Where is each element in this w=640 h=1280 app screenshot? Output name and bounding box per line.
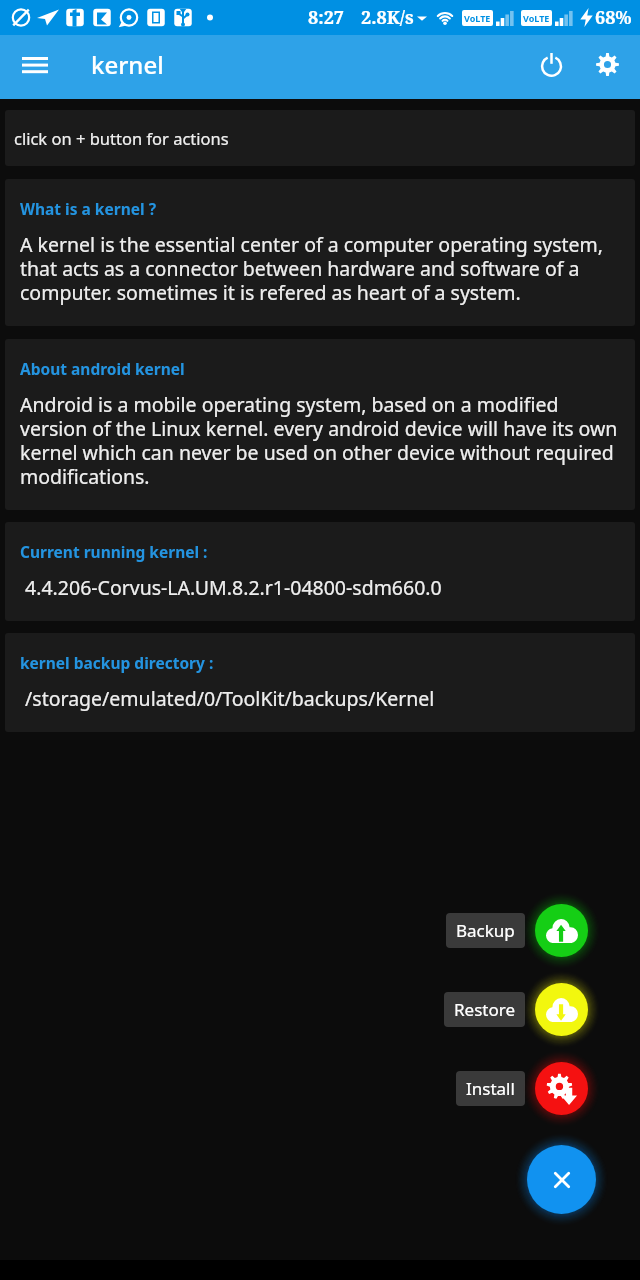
staticText: VoLTE xyxy=(523,12,550,24)
staticText: 8:27 xyxy=(308,5,344,30)
staticText: Current running kernel : xyxy=(20,541,208,562)
button[interactable]: click on + button for actions xyxy=(5,110,635,166)
button[interactable]: Menu xyxy=(6,33,64,97)
staticText: Install xyxy=(466,1077,515,1100)
button[interactable]: Backup xyxy=(535,904,588,957)
staticText: 4.4.206-Corvus-LA.UM.8.2.r1-04800-sdm660… xyxy=(20,574,442,601)
button[interactable]: Restore xyxy=(444,992,525,1027)
staticText: /storage/emulated/0/ToolKit/backups/Kern… xyxy=(20,685,435,712)
button[interactable]: Restore xyxy=(535,983,588,1036)
button[interactable]: Current running kernel : xyxy=(5,522,635,621)
staticText: kernel xyxy=(91,48,164,81)
staticText: Android is a mobile operating system, ba… xyxy=(20,391,623,490)
button[interactable]: What is a kernel ? xyxy=(5,179,635,326)
button[interactable]: Install xyxy=(535,1062,588,1115)
button[interactable]: Power xyxy=(523,36,579,92)
staticText: 68% xyxy=(595,5,632,30)
button[interactable]: Close actions xyxy=(527,1145,596,1214)
staticText: kernel backup directory : xyxy=(20,652,214,673)
staticText: A kernel is the essential center of a co… xyxy=(20,231,623,306)
staticText: VoLTE xyxy=(464,12,491,24)
staticText: What is a kernel ? xyxy=(20,198,157,219)
button[interactable]: About android kernel xyxy=(5,339,635,510)
staticText: 2.8K/s xyxy=(361,5,414,30)
button[interactable]: Settings xyxy=(579,36,635,92)
staticText: Backup xyxy=(456,919,515,942)
staticText: click on + button for actions xyxy=(14,127,229,149)
staticText: Restore xyxy=(454,998,515,1021)
button[interactable]: kernel backup directory : xyxy=(5,633,635,732)
staticText: About android kernel xyxy=(20,358,185,379)
button[interactable]: Install xyxy=(456,1071,525,1106)
button[interactable]: Backup xyxy=(446,913,525,948)
